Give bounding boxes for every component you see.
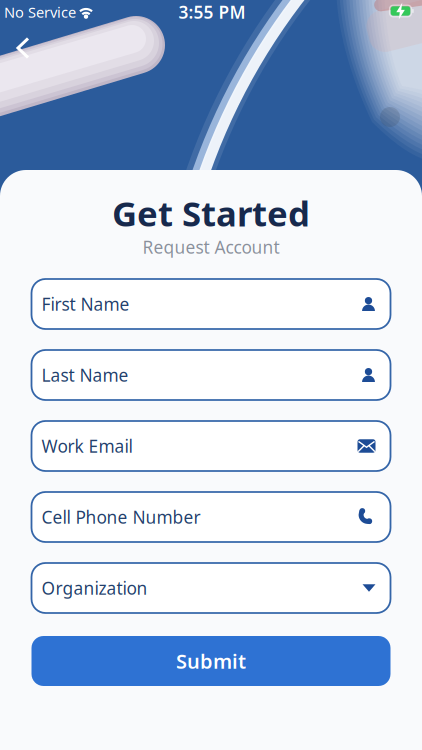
button[interactable]: Cell Phone Number	[31, 492, 390, 542]
button[interactable]: Last Name	[31, 350, 390, 400]
staticText: Request Account	[142, 235, 279, 258]
button[interactable]: Back	[3, 28, 43, 68]
staticText: Get Started	[112, 190, 310, 236]
staticText: Last Name	[41, 363, 128, 386]
staticText: First Name	[41, 292, 129, 315]
staticText: Work Email	[41, 434, 132, 457]
staticText: 3:55 PM	[178, 0, 245, 23]
staticText: Organization	[41, 576, 147, 599]
staticText: No Service	[4, 2, 76, 22]
button[interactable]: First Name	[31, 279, 390, 329]
button[interactable]: Submit	[31, 636, 390, 686]
staticText: Submit	[176, 648, 246, 674]
staticText: Cell Phone Number	[41, 505, 200, 528]
button[interactable]: Organization	[31, 563, 390, 613]
button[interactable]: Work Email	[31, 421, 390, 471]
